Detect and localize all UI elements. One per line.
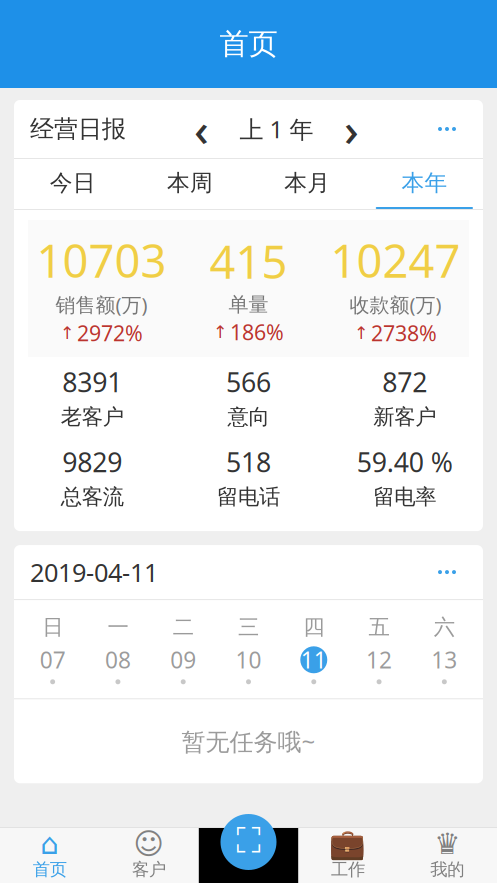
staticText: ☺ [134, 827, 165, 860]
staticText: 07 [40, 645, 66, 675]
staticText: 工作 [331, 859, 365, 880]
staticText: 本年 [401, 169, 447, 197]
staticText: 暂无任务哦~ [181, 725, 315, 757]
staticText: 意向 [227, 404, 269, 430]
staticText: 首页 [33, 859, 67, 880]
staticText: 566 [226, 364, 271, 400]
staticText: 11 [301, 645, 327, 675]
button[interactable]: 💼 [298, 828, 398, 883]
staticText: 首页 [219, 26, 277, 62]
staticText: ↑ [60, 323, 75, 343]
staticText: 单量 [228, 292, 268, 317]
staticText: 8391 [62, 364, 122, 400]
staticText: 四 [303, 614, 324, 640]
staticText: 留电率 [373, 484, 436, 510]
staticText: ‹ [194, 99, 209, 159]
staticText: ⌂ [40, 827, 59, 860]
staticText: ↑ [213, 322, 228, 342]
staticText: 💼 [329, 827, 366, 861]
staticText: 13 [431, 645, 457, 675]
button[interactable]: More options [427, 109, 467, 149]
staticText: ↑ [354, 323, 369, 343]
staticText: 销售额(万) [55, 291, 147, 318]
button[interactable]: 本月 [248, 159, 366, 209]
staticText: ♛ [434, 827, 460, 860]
staticText: 9829 [62, 444, 122, 480]
staticText: 518 [226, 444, 271, 480]
button[interactable]: 五 [346, 614, 412, 684]
button[interactable]: Scan customer [220, 814, 276, 870]
staticText: 总客流 [61, 484, 124, 510]
staticText: 收款额(万) [349, 291, 441, 318]
staticText: 本月 [284, 169, 330, 197]
staticText: ⛶ [236, 825, 260, 859]
staticText: 2738% [371, 319, 437, 347]
staticText: 10703 [36, 230, 166, 290]
staticText: 415 [209, 231, 287, 291]
staticText: 上 1 年 [239, 113, 313, 145]
staticText: 10247 [330, 230, 460, 290]
button[interactable]: 一 [85, 614, 151, 684]
staticText: 872 [382, 364, 427, 400]
staticText: 留电话 [217, 484, 280, 510]
staticText: 日 [42, 614, 63, 640]
staticText: › [344, 99, 359, 159]
button[interactable]: ⌂ [0, 828, 99, 883]
button[interactable]: Next period [331, 109, 371, 149]
staticText: 五 [369, 614, 390, 640]
staticText: 09 [170, 645, 196, 675]
staticText: 59.40 % [357, 444, 453, 480]
button[interactable]: ☺ [99, 828, 199, 883]
staticText: 08 [105, 645, 131, 675]
staticText: 2972% [77, 319, 143, 347]
staticText: 我的 [430, 859, 464, 880]
staticText: 新客户 [373, 404, 436, 430]
button[interactable]: More options [427, 552, 467, 592]
button[interactable]: 六 [412, 614, 477, 684]
staticText: 老客户 [61, 404, 124, 430]
staticText: 经营日报 [30, 114, 126, 144]
staticText: 客户 [132, 859, 166, 880]
staticText: 186% [230, 318, 284, 346]
button[interactable]: 日 [20, 614, 85, 684]
staticText: 二 [173, 614, 194, 640]
staticText: 10 [235, 645, 261, 675]
button[interactable]: 本年 [366, 159, 483, 209]
staticText: 12 [366, 645, 392, 675]
staticText: 今日 [50, 169, 96, 197]
staticText: 2019-04-11 [30, 555, 158, 589]
staticText: 六 [434, 614, 455, 640]
staticText: 本周 [167, 169, 213, 197]
button[interactable]: 二 [151, 614, 216, 684]
button[interactable]: 三 [216, 614, 281, 684]
staticText: 一 [107, 614, 128, 640]
button[interactable]: ♛ [398, 828, 497, 883]
button[interactable]: 四 [281, 614, 346, 684]
staticText: 三 [238, 614, 259, 640]
button[interactable]: Previous period [181, 109, 221, 149]
button[interactable]: 今日 [14, 159, 131, 209]
button[interactable]: 本周 [131, 159, 249, 209]
